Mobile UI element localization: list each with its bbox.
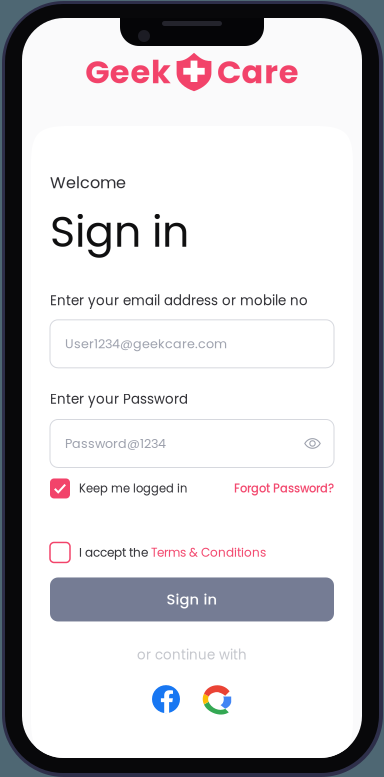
button[interactable]: I accept the (50, 542, 334, 562)
button[interactable]: Continue with Facebook (152, 685, 180, 713)
staticText: Care (217, 50, 299, 94)
staticText: Welcome (50, 171, 126, 194)
staticText: Geek (85, 50, 171, 94)
button[interactable]: Keep me logged in (50, 478, 187, 498)
staticText: Enter your Password (50, 390, 188, 408)
staticText: or continue with (137, 645, 247, 664)
button[interactable]: Sign in (50, 577, 334, 621)
button[interactable]: Forgot Password? (234, 480, 334, 496)
staticText: Terms & Conditions (151, 544, 266, 561)
staticText: Password@1234 (65, 435, 166, 452)
staticText: User1234@geekcare.com (65, 335, 227, 353)
staticText: Enter your email address or mobile no (50, 291, 308, 310)
staticText: Sign in (166, 589, 217, 610)
staticText: Forgot Password? (234, 480, 334, 496)
staticText: I accept the (79, 544, 151, 561)
staticText: Sign in (50, 202, 189, 262)
staticText: Keep me logged in (79, 480, 187, 496)
button[interactable]: Continue with Google (202, 684, 232, 714)
